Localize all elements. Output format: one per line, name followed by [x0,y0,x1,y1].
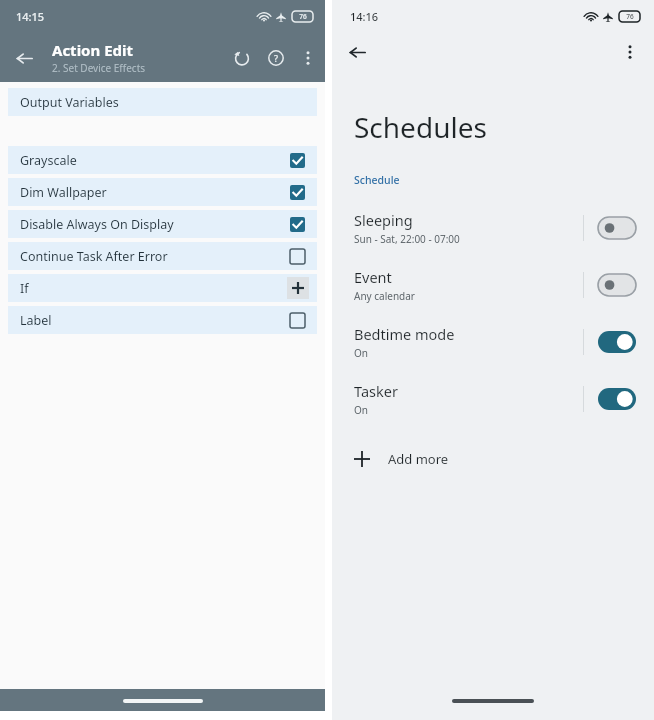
staticText: Tasker [354,381,398,401]
staticText: On [354,346,368,360]
button[interactable]: Tasker [332,370,654,427]
button[interactable]: Disable Always On Display [8,210,317,238]
staticText: Output Variables [20,94,119,111]
button[interactable]: Add condition [287,277,309,299]
button[interactable]: More options [614,36,646,68]
staticText: Event [354,267,392,287]
staticText: If [20,280,29,297]
button[interactable]: Help [259,41,293,75]
staticText: Action Edit [52,40,134,60]
staticText: ? [274,52,279,64]
button[interactable]: Continue Task After Error [8,242,317,270]
staticText: Grayscale [20,152,77,169]
staticText: 14:15 [16,9,45,24]
button[interactable]: Undo [225,41,259,75]
button[interactable]: Dim Wallpaper [8,178,317,206]
staticText: 2. Set Device Effects [52,61,146,75]
staticText: 76 [299,12,307,21]
button[interactable]: Output Variables [8,88,317,116]
button[interactable]: Tasker toggle [598,388,636,410]
staticText: Bedtime mode [354,324,455,344]
button[interactable]: Event [332,256,654,313]
staticText: Any calendar [354,289,415,303]
button[interactable]: Add more [332,439,654,479]
staticText: Sleeping [354,210,413,230]
staticText: 76 [626,12,634,21]
staticText: 14:16 [350,9,379,24]
staticText: Label [20,312,52,329]
staticText: Schedules [354,108,487,146]
button[interactable]: Back [6,40,42,76]
staticText: Dim Wallpaper [20,184,107,201]
button[interactable]: Back [340,35,374,69]
staticText: Continue Task After Error [20,248,168,265]
button[interactable]: More options [293,43,323,73]
button[interactable]: If [8,274,317,302]
button[interactable]: Sleeping [332,199,654,256]
button[interactable]: Bedtime mode toggle [598,331,636,353]
staticText: Sun - Sat, 22:00 - 07:00 [354,232,460,246]
staticText: Schedule [354,173,400,187]
staticText: Add more [388,450,449,468]
staticText: Disable Always On Display [20,216,174,233]
button[interactable]: Bedtime mode [332,313,654,370]
button[interactable]: Sleeping toggle [598,217,636,239]
staticText: On [354,403,368,417]
button[interactable]: Grayscale [8,146,317,174]
button[interactable]: Label [8,306,317,334]
button[interactable]: Event toggle [598,274,636,296]
